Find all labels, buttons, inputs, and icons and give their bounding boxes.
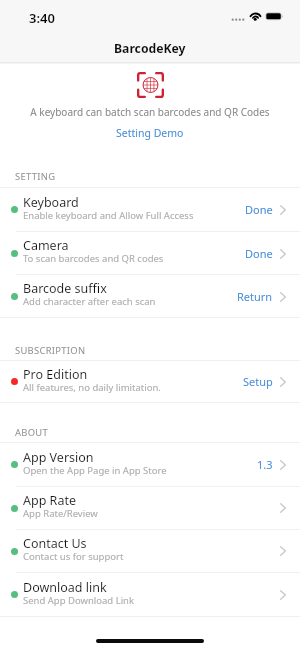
staticText: Keyboard	[23, 194, 79, 211]
button[interactable]: Camera	[0, 232, 300, 274]
staticText: A keyboard can batch scan barcodes and Q…	[30, 105, 270, 119]
button[interactable]: App Rate	[0, 487, 300, 529]
staticText: App Rate/Review	[23, 507, 98, 520]
staticText: ABOUT	[15, 426, 49, 439]
button[interactable]: App Version	[0, 443, 300, 486]
staticText: Camera	[23, 237, 69, 254]
staticText: SUBSCRIPTION	[15, 344, 86, 357]
staticText: Done	[245, 246, 273, 261]
staticText: Setup	[243, 374, 273, 389]
staticText: Send App Download Link	[23, 594, 135, 607]
staticText: Add character after each scan	[23, 295, 156, 308]
staticText: Return	[237, 289, 273, 304]
staticText: 1.3	[257, 457, 273, 472]
button[interactable]: Contact Us	[0, 530, 300, 572]
staticText: Barcode suffix	[23, 280, 107, 297]
staticText: App Rate	[23, 492, 76, 509]
staticText: Contact Us	[23, 535, 87, 552]
staticText: 3:40	[29, 9, 55, 27]
button[interactable]: Pro Edition	[0, 361, 300, 402]
staticText: To scan barcodes and QR codes	[23, 252, 164, 265]
staticText: Contact us for support	[23, 550, 124, 563]
button[interactable]: Barcode suffix	[0, 275, 300, 317]
staticText: Download link	[23, 579, 107, 596]
staticText: All features, no daily limitation.	[23, 381, 161, 394]
staticText: App Version	[23, 449, 94, 466]
button[interactable]: Download link	[0, 573, 300, 616]
staticText: BarcodeKey	[114, 40, 186, 57]
staticText: Done	[245, 202, 273, 217]
button[interactable]: Setting Demo	[116, 126, 184, 140]
staticText: Open the App Page in App Store	[23, 464, 167, 477]
staticText: Enable keyboard and Allow Full Access	[23, 209, 194, 222]
button[interactable]: Keyboard	[0, 188, 300, 231]
staticText: SETTING	[15, 170, 56, 183]
staticText: Pro Edition	[23, 366, 88, 383]
